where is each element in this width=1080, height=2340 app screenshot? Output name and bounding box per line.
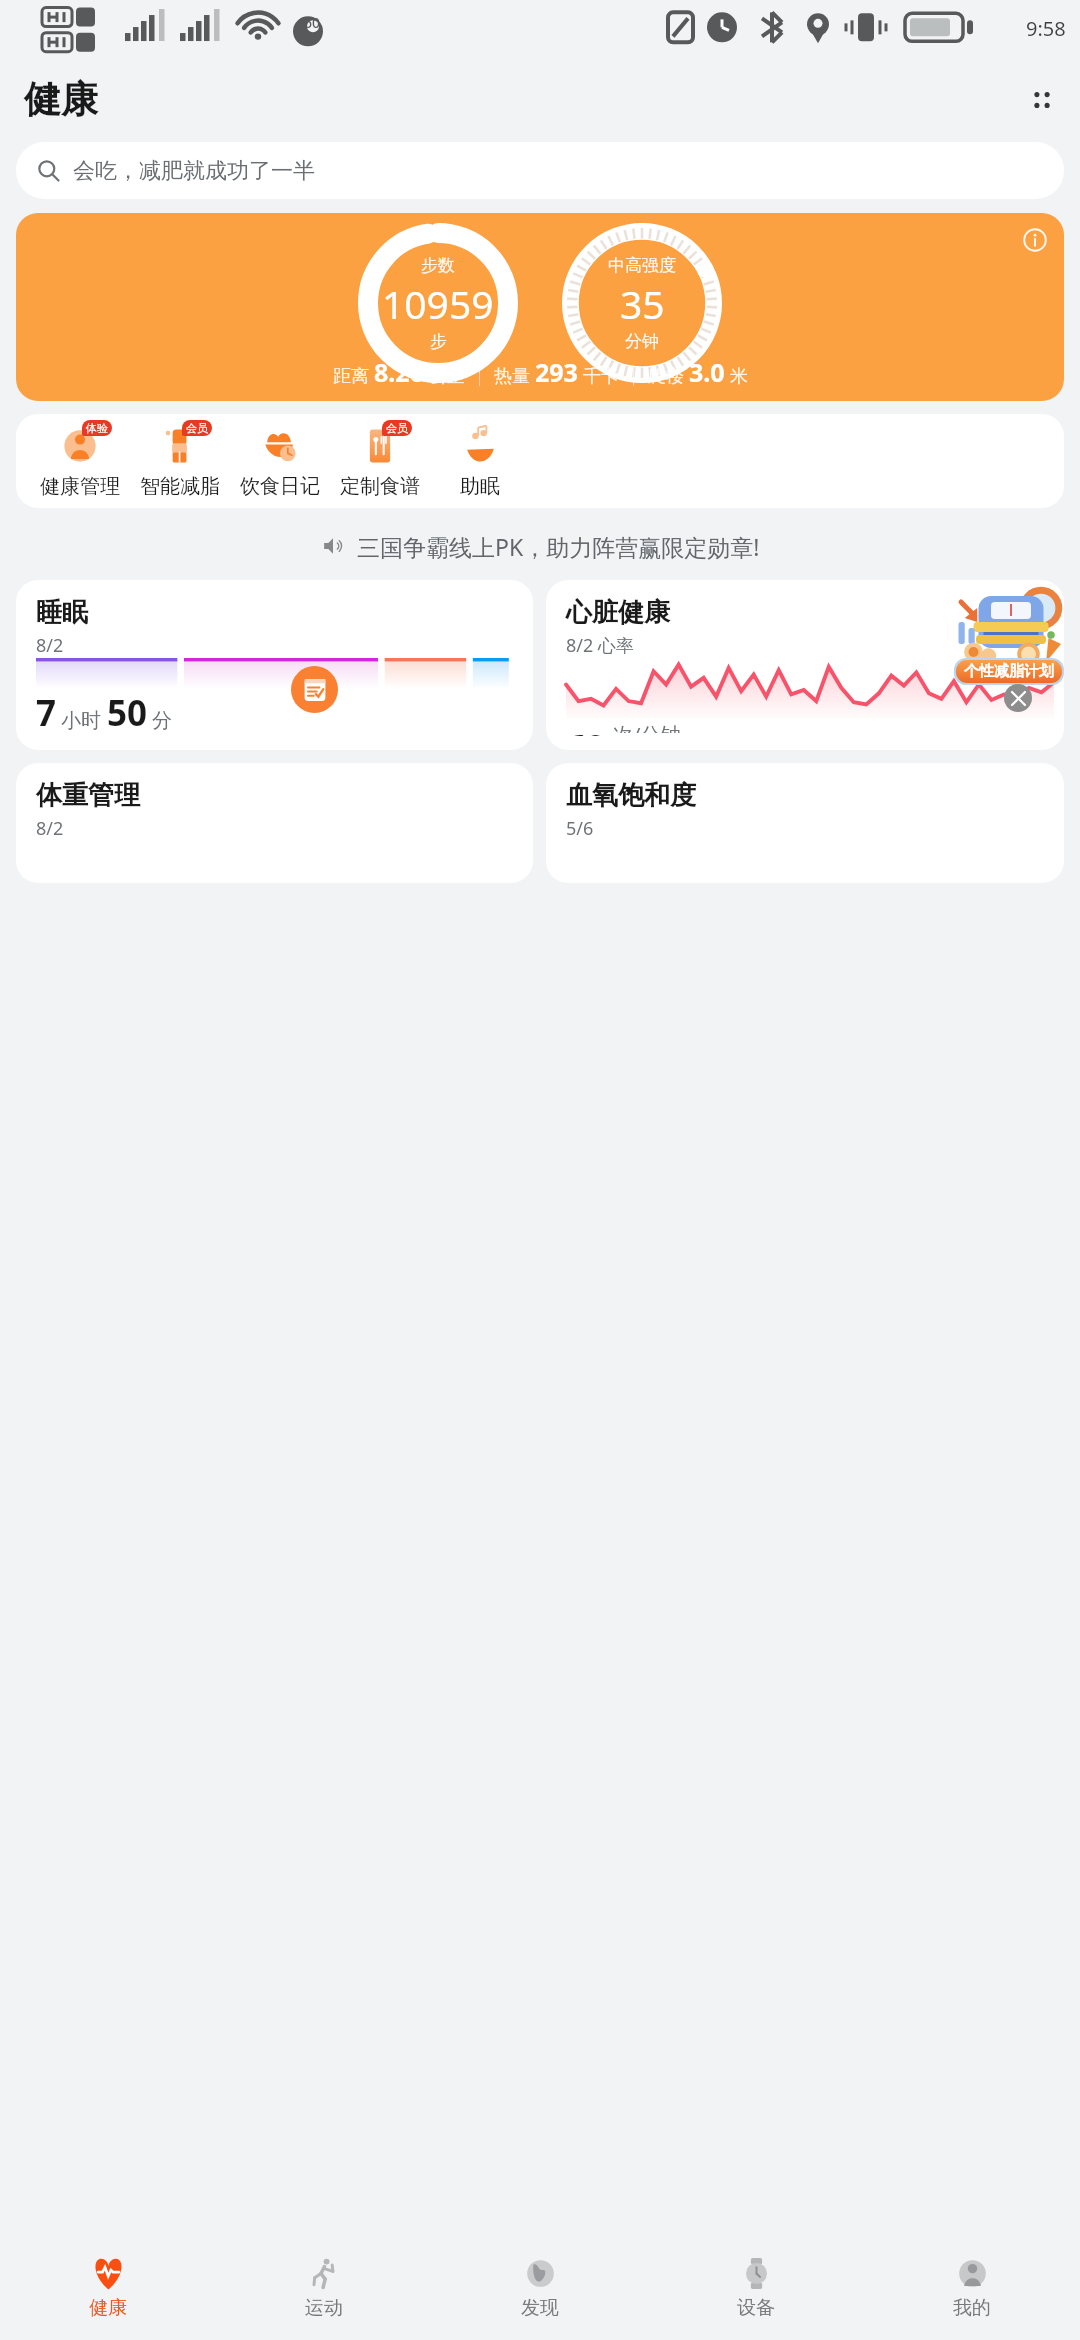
staticText: 运动 [305, 2296, 343, 2320]
button[interactable]: 睡眠 [16, 580, 533, 750]
button[interactable]: 体重管理 [16, 763, 533, 883]
staticText: 8/2 心率 [566, 633, 634, 658]
button[interactable]: 设备 [648, 2236, 864, 2340]
staticText: 米 [730, 365, 748, 388]
staticText: 50 [107, 689, 148, 736]
button[interactable]: 助眠 [430, 423, 530, 499]
staticText: 会员 [386, 421, 408, 435]
staticText: 发现 [521, 2296, 559, 2320]
staticText: 会员 [186, 421, 208, 435]
button[interactable]: 说明 [1020, 225, 1050, 255]
button[interactable]: 会员 [130, 423, 230, 499]
staticText: 10959 [382, 277, 494, 330]
staticText: 设备 [737, 2296, 775, 2320]
button[interactable]: 心脏健康 [546, 580, 1064, 750]
staticText: 三国争霸线上PK，助力阵营赢限定勋章! [357, 531, 760, 562]
staticText: 健康 [89, 2296, 127, 2320]
staticText: 8.26 [374, 355, 424, 389]
staticText: 会吃，减肥就成功了一半 [73, 157, 315, 185]
staticText: 健康管理 [40, 474, 120, 499]
staticText: 293 [535, 355, 578, 389]
button[interactable]: 体验 [30, 423, 130, 499]
button[interactable]: 我的 [864, 2236, 1080, 2340]
staticText: 3.0 [689, 355, 725, 389]
staticText: 69 [566, 724, 607, 736]
button[interactable]: 运动 [216, 2236, 432, 2340]
staticText: 公里 [429, 365, 465, 388]
staticText: 睡眠 [36, 596, 88, 629]
staticText: 5/6 [566, 816, 594, 841]
staticText: 千卡 [583, 365, 619, 388]
staticText: 爬楼 [648, 365, 684, 388]
staticText: 智能减脂 [140, 474, 220, 499]
staticText: 次/分钟 [613, 721, 681, 733]
staticText: 7 [36, 689, 57, 736]
button[interactable]: 饮食日记 [230, 423, 330, 499]
staticText: 中高强度 [608, 255, 676, 276]
staticText: 步 [430, 331, 447, 352]
button[interactable]: 健康记录 [291, 666, 338, 713]
staticText: 分钟 [625, 331, 659, 352]
staticText: 步数 [421, 255, 455, 276]
staticText: 血氧饱和度 [566, 779, 696, 812]
staticText: 体验 [86, 421, 108, 435]
staticText: 8/2 [36, 633, 64, 658]
staticText: 定制食谱 [340, 474, 420, 499]
button[interactable]: 健康 [0, 2236, 216, 2340]
staticText: 35 [620, 277, 665, 330]
staticText: 助眠 [460, 474, 500, 499]
staticText: 我的 [953, 2296, 991, 2320]
button[interactable]: 更多 [1018, 76, 1066, 124]
staticText: 热量 [494, 365, 530, 388]
button[interactable]: 关闭广告 [1004, 684, 1032, 712]
button[interactable]: 个性减脂计划 [964, 662, 1054, 681]
staticText: 个性减脂计划 [964, 662, 1054, 681]
staticText: 心脏健康 [566, 596, 670, 629]
button[interactable]: 发现 [432, 2236, 648, 2340]
staticText: 9:58 [1026, 15, 1066, 42]
staticText: 8/2 [36, 816, 64, 841]
staticText: 健康 [24, 76, 98, 123]
button[interactable]: 三国争霸线上PK，助力阵营赢限定勋章! [0, 526, 1080, 566]
button[interactable]: 会员 [330, 423, 430, 499]
button[interactable]: 血氧饱和度 [546, 763, 1064, 883]
staticText: 饮食日记 [240, 474, 320, 499]
staticText: 小时 [61, 708, 101, 733]
button[interactable]: 会吃，减肥就成功了一半 [16, 142, 1064, 199]
staticText: 分 [152, 708, 172, 733]
staticText: 60 [304, 13, 321, 32]
button[interactable]: 说明 [16, 213, 1064, 401]
staticText: 体重管理 [36, 779, 140, 812]
staticText: 距离 [333, 365, 369, 388]
